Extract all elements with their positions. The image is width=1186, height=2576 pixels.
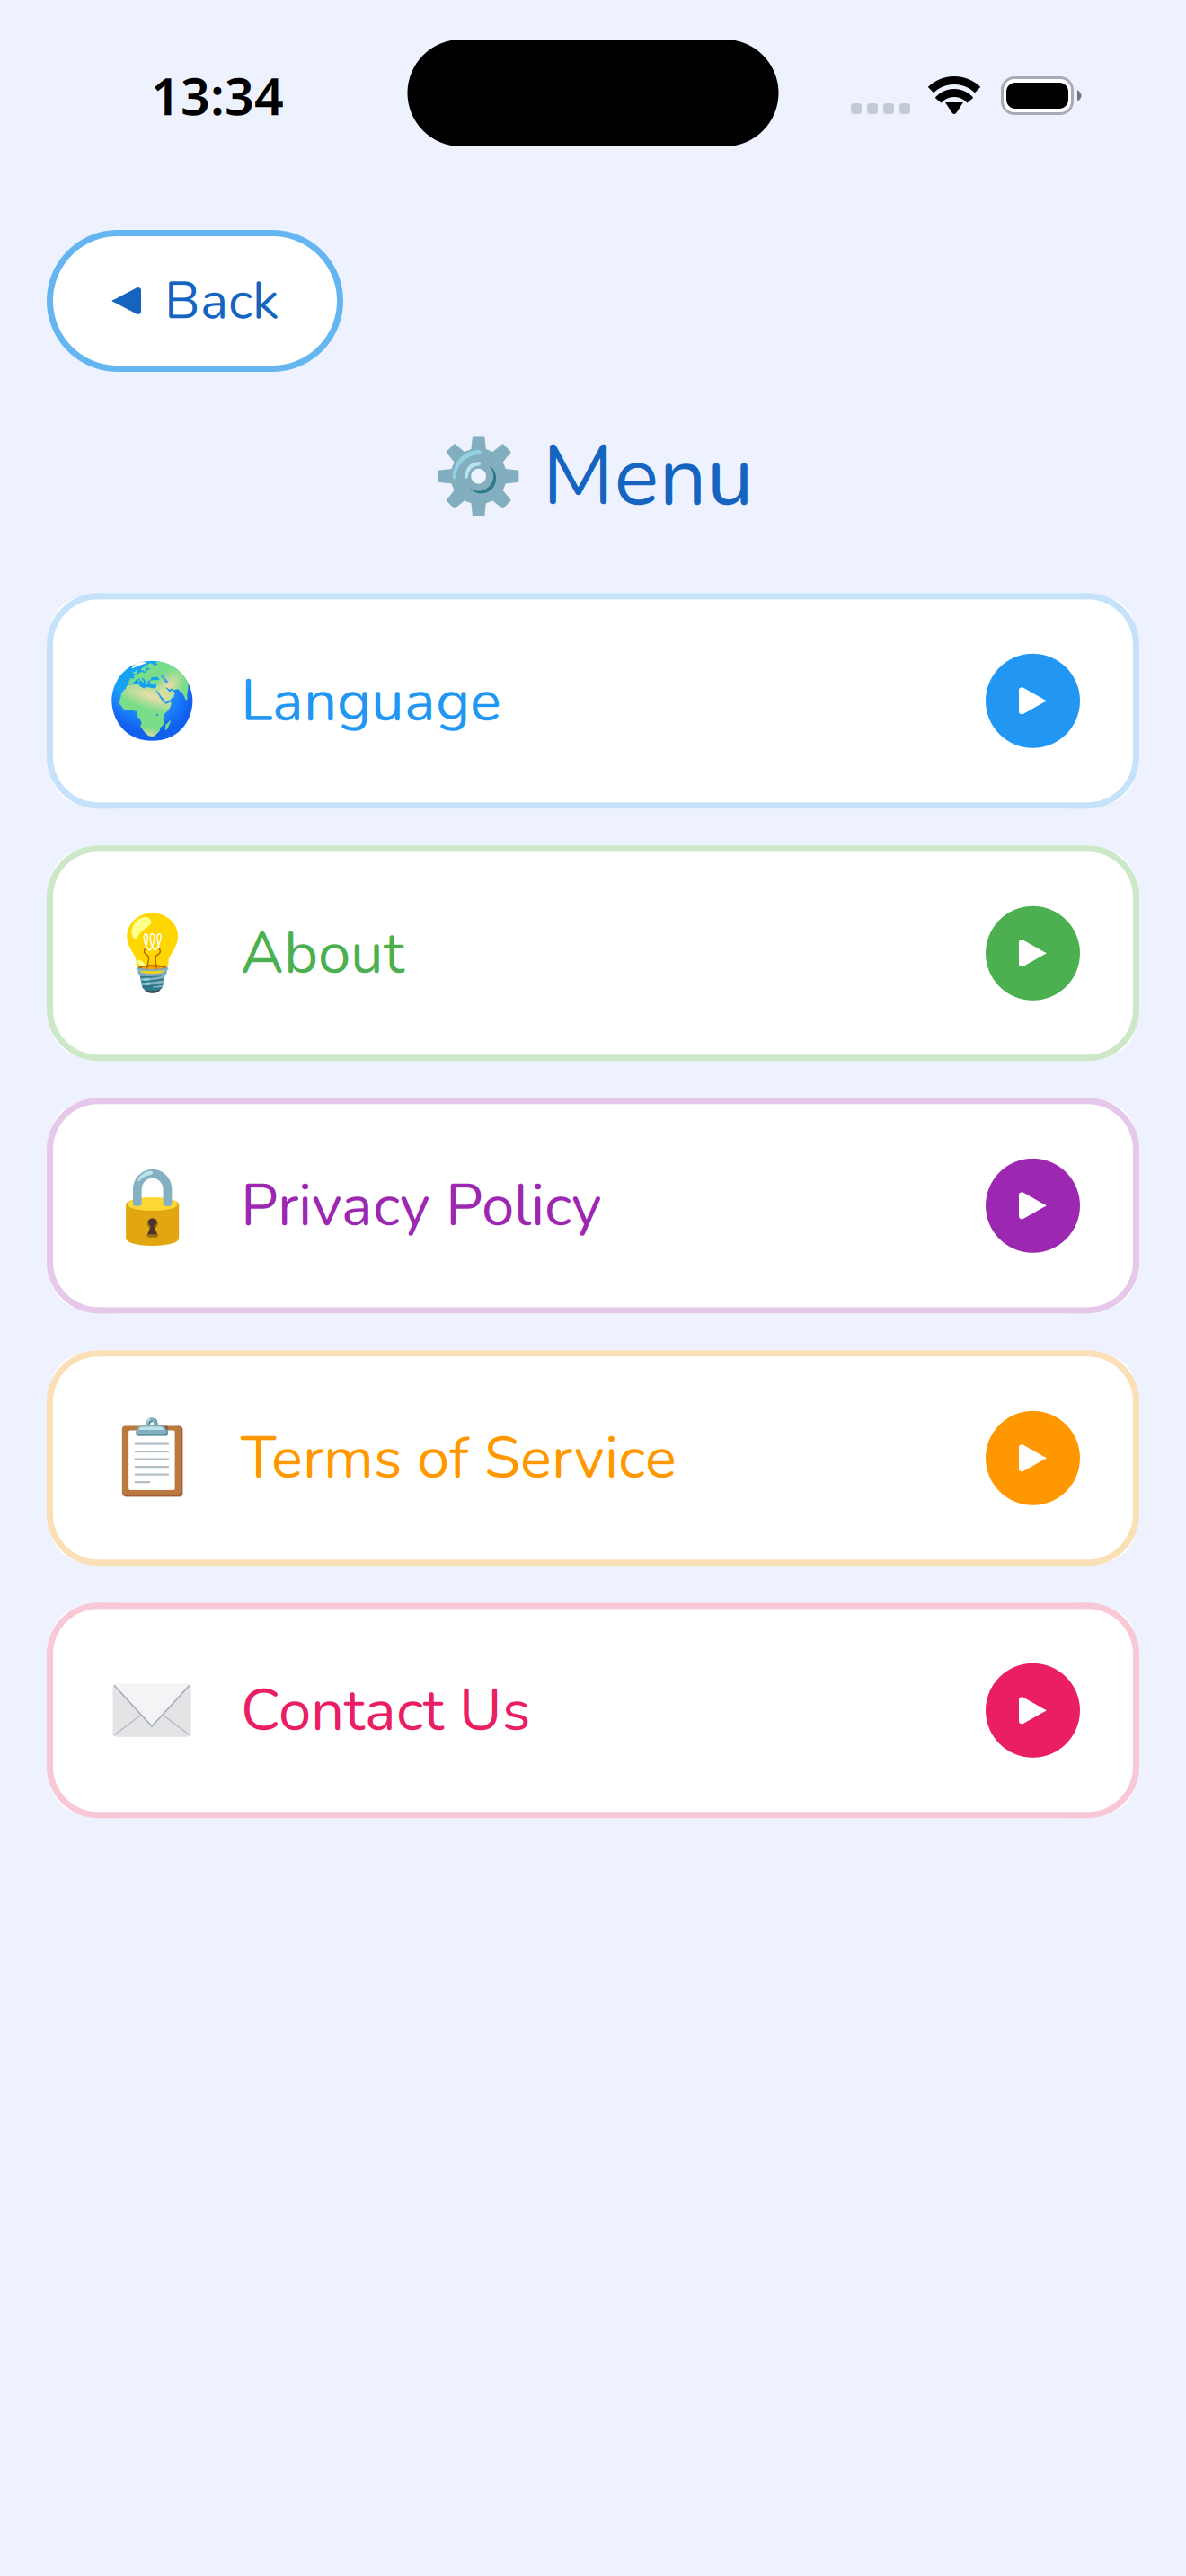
staticText: Language [241,661,501,741]
staticText: Menu [542,419,753,534]
staticText: ⚙️ [433,435,523,518]
staticText: 🔒 [106,1164,197,1247]
button[interactable]: 📋 [47,1350,1139,1566]
staticText: Terms of Service [241,1418,677,1498]
staticText: 13:34 [151,61,284,129]
staticText: Privacy Policy [241,1166,602,1246]
button[interactable]: Contact Us [47,1603,1139,1818]
button[interactable]: Back [47,230,343,372]
staticText: Contact Us [241,1670,530,1750]
button[interactable]: 💡 [47,845,1139,1061]
button[interactable]: 🌍 [47,593,1139,809]
button[interactable]: 🔒 [47,1098,1139,1313]
staticText: 💡 [106,911,197,995]
staticText: About [241,913,404,993]
staticText: 📋 [106,1416,197,1500]
staticText: Back [164,265,279,337]
staticText: 🌍 [106,659,197,743]
